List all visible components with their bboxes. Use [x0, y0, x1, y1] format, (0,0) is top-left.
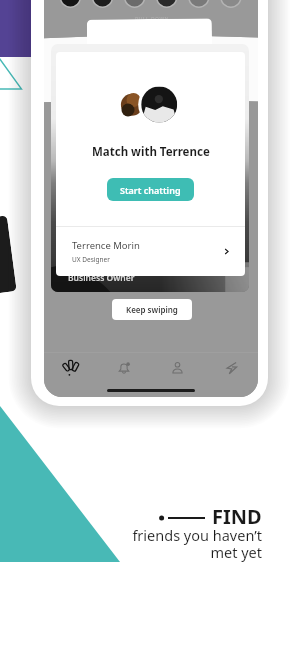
- button[interactable]: Terrence Morin: [56, 227, 245, 276]
- button[interactable]: Boost: [204, 353, 258, 383]
- staticText: PULL DOWN: [135, 16, 169, 23]
- staticText: FIND: [212, 503, 262, 530]
- staticText: Keep swiping: [126, 304, 178, 315]
- staticText: Match with Terrence: [92, 144, 210, 160]
- button[interactable]: Start chatting: [107, 178, 194, 201]
- staticText: Start chatting: [120, 184, 181, 196]
- staticText: friends you haven’t met yet: [110, 525, 262, 562]
- button[interactable]: Keep swiping: [112, 299, 192, 320]
- button[interactable]: Profile: [150, 353, 204, 383]
- button[interactable]: Notifications: [97, 353, 150, 383]
- staticText: Terrence Morin: [72, 239, 140, 252]
- button[interactable]: Cards: [44, 353, 97, 383]
- staticText: UX Designer: [72, 255, 110, 264]
- staticText: Business Owner: [68, 272, 135, 284]
